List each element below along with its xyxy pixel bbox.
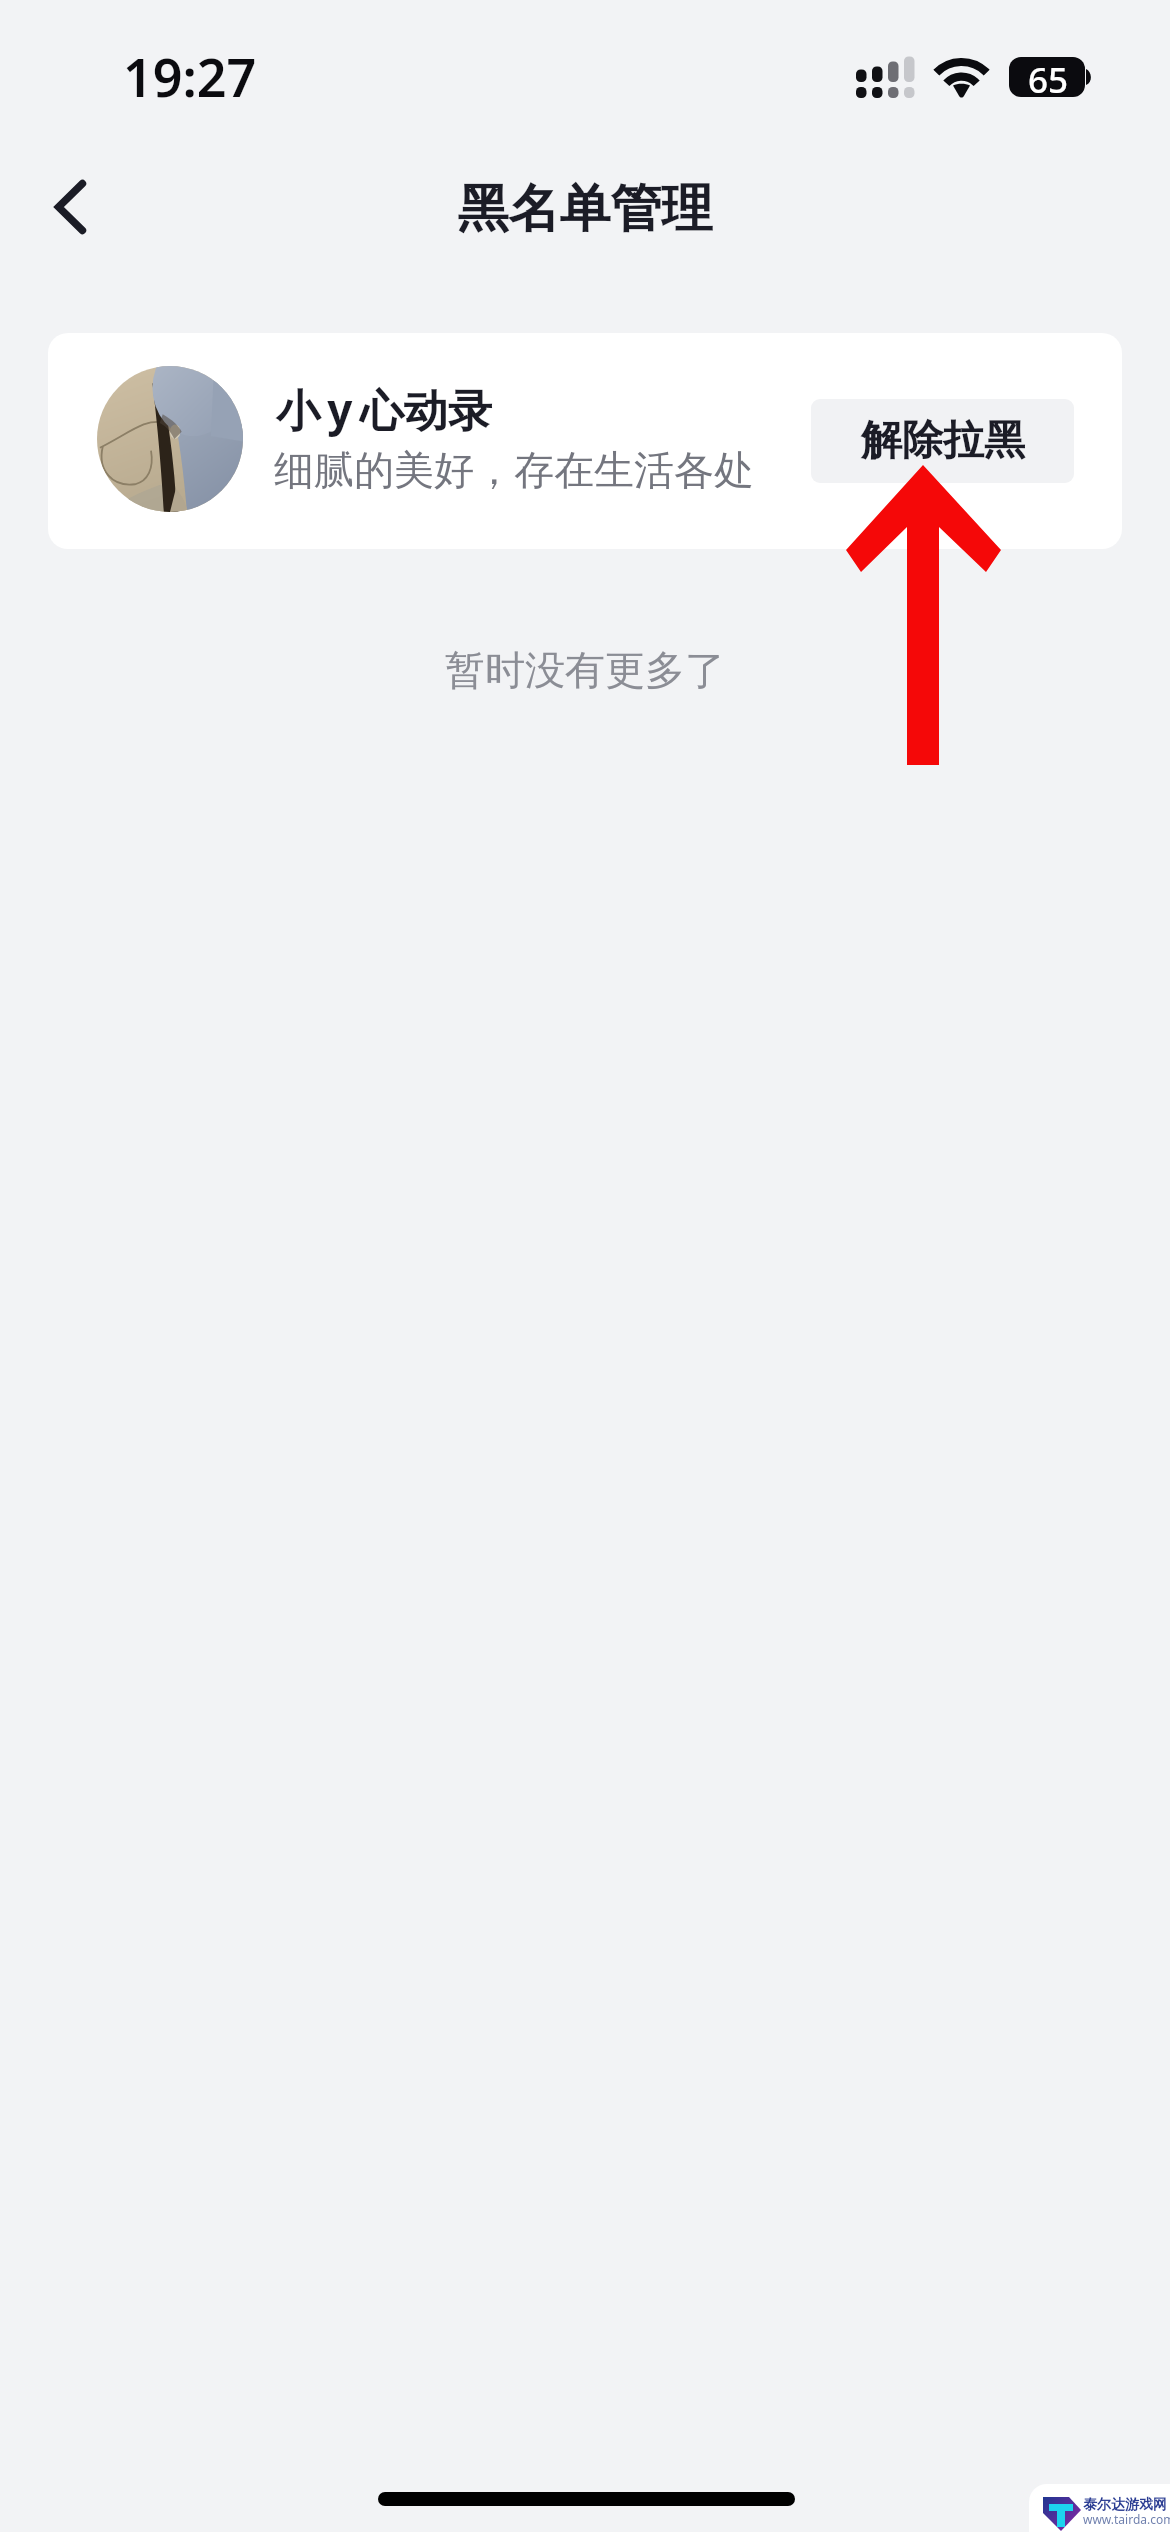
staticText: 65 bbox=[1028, 57, 1069, 96]
staticText: 解除拉黑 bbox=[861, 415, 1025, 467]
staticText: www.tairda.com bbox=[1083, 2511, 1170, 2527]
button[interactable]: 小 y 心动录 bbox=[48, 333, 1122, 549]
staticText: 细腻的美好，存在生活各处 bbox=[274, 445, 754, 495]
staticText: 暂时没有更多了 bbox=[0, 645, 1170, 695]
staticText: 19:27 bbox=[123, 41, 257, 112]
button[interactable]: Back bbox=[21, 169, 97, 245]
staticText: 小 y 心动录 bbox=[276, 379, 492, 439]
staticText: 泰尔达游戏网 bbox=[1083, 2496, 1167, 2514]
button[interactable]: 解除拉黑 bbox=[811, 399, 1074, 483]
staticText: 黑名单管理 bbox=[0, 177, 1170, 241]
